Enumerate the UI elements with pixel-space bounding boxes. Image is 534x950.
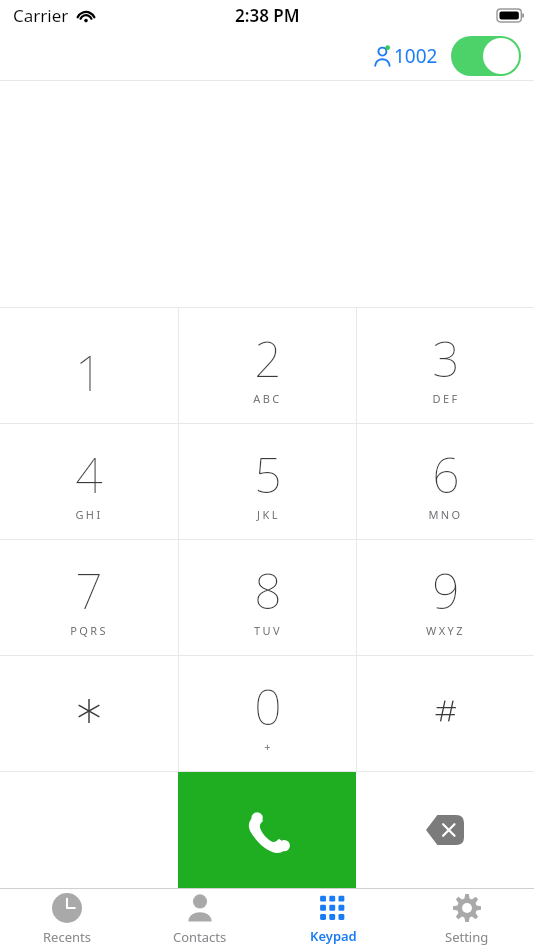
- staticText: MNO: [428, 507, 463, 522]
- staticText: 5: [254, 442, 282, 507]
- staticText: Keypad: [310, 927, 357, 945]
- button[interactable]: Star: [0, 656, 178, 771]
- button[interactable]: 4: [0, 424, 178, 539]
- button[interactable]: Contacts: [133, 889, 266, 950]
- button[interactable]: Pound: [357, 656, 534, 771]
- staticText: 4: [75, 442, 103, 507]
- button[interactable]: Delete: [426, 815, 464, 845]
- staticText: 1: [75, 340, 103, 405]
- button[interactable]: 3: [357, 308, 534, 423]
- staticText: WXYZ: [426, 623, 465, 638]
- staticText: DEF: [432, 391, 460, 406]
- staticText: Carrier: [13, 4, 69, 27]
- staticText: JKL: [257, 507, 280, 522]
- staticText: ABC: [253, 391, 282, 406]
- button[interactable]: 1002: [374, 43, 438, 69]
- staticText: +: [264, 739, 273, 754]
- button[interactable]: 9: [357, 540, 534, 655]
- button[interactable]: Line toggle on: [451, 36, 521, 76]
- button[interactable]: 2: [179, 308, 356, 423]
- staticText: 9: [432, 558, 460, 623]
- staticText: 0: [254, 674, 282, 739]
- staticText: 1002: [394, 43, 438, 69]
- button[interactable]: 7: [0, 540, 178, 655]
- staticText: 3: [432, 326, 460, 391]
- button[interactable]: Call: [178, 772, 356, 888]
- button[interactable]: 0: [179, 656, 356, 771]
- staticText: PQRS: [70, 623, 108, 638]
- button[interactable]: 1: [0, 308, 178, 423]
- staticText: Contacts: [173, 928, 227, 946]
- button[interactable]: 5: [179, 424, 356, 539]
- staticText: Recents: [43, 928, 91, 946]
- button[interactable]: 8: [179, 540, 356, 655]
- button[interactable]: Keypad: [266, 889, 400, 950]
- staticText: 7: [75, 558, 103, 623]
- staticText: 2:38 PM: [235, 4, 300, 27]
- button[interactable]: Recents: [0, 889, 133, 950]
- staticText: 6: [432, 442, 460, 507]
- staticText: Setting: [445, 928, 489, 946]
- staticText: TUV: [254, 623, 282, 638]
- staticText: 8: [254, 558, 282, 623]
- staticText: GHI: [75, 507, 103, 522]
- button[interactable]: 6: [357, 424, 534, 539]
- button[interactable]: Setting: [400, 889, 534, 950]
- staticText: 2: [254, 326, 282, 391]
